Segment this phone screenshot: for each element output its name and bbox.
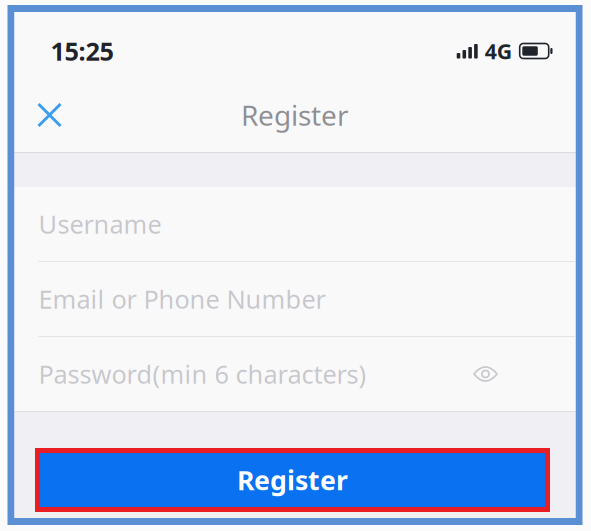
button[interactable]: Show password (465, 337, 505, 411)
button[interactable]: Close (23, 89, 75, 141)
staticText: 4G (485, 37, 512, 65)
staticText: Register (241, 96, 349, 134)
staticText: Email or Phone Number (38, 282, 325, 316)
staticText: Username (38, 207, 161, 241)
staticText: Register (237, 462, 348, 498)
button[interactable]: Register (40, 453, 545, 507)
button[interactable]: Email or Phone Number (14, 262, 505, 336)
button[interactable]: Password(min 6 characters) (14, 337, 465, 411)
staticText: 15:25 (50, 34, 113, 68)
button[interactable]: Username (14, 187, 505, 261)
staticText: Password(min 6 characters) (38, 357, 366, 391)
